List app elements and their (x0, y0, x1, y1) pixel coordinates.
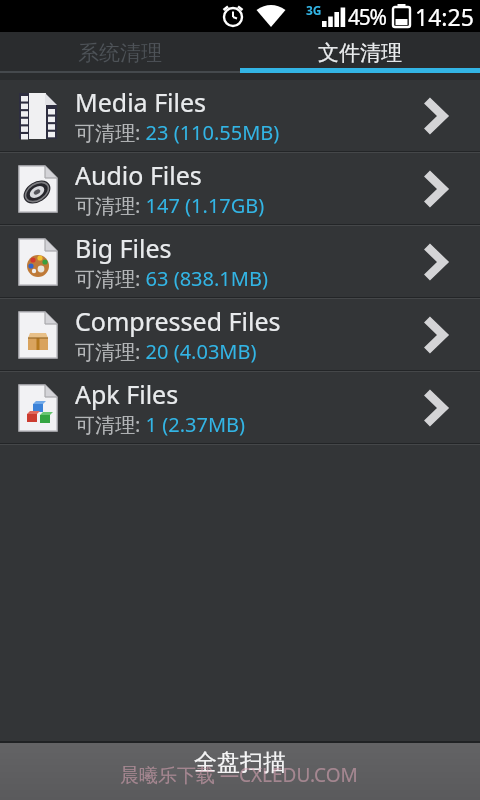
staticText: 3G (306, 2, 322, 18)
button[interactable]: Audio Files (0, 153, 480, 224)
button[interactable]: 全盘扫描 (0, 743, 480, 800)
staticText: Audio Files (75, 158, 202, 192)
staticText: 可清理: 1 (2.37MB) (75, 411, 246, 438)
button[interactable]: Media Files (0, 80, 480, 151)
staticText: 可清理: 20 (4.03MB) (75, 338, 257, 365)
staticText: 45% (348, 3, 386, 32)
staticText: 全盘扫描 (194, 748, 286, 777)
button[interactable]: 系统清理 (0, 32, 240, 80)
staticText: 系统清理 (78, 40, 162, 66)
button[interactable]: Apk Files (0, 372, 480, 443)
staticText: 可清理: 63 (838.1MB) (75, 265, 268, 292)
staticText: 晨曦乐下载 —CXLEDU.COM (120, 762, 358, 788)
button[interactable]: 文件清理 (240, 32, 480, 80)
staticText: 可清理: 147 (1.17GB) (75, 192, 265, 219)
button[interactable]: Compressed Files (0, 299, 480, 370)
staticText: Big Files (75, 231, 172, 265)
staticText: Media Files (75, 85, 207, 119)
staticText: 文件清理 (318, 40, 402, 66)
staticText: 14:25 (415, 1, 474, 32)
staticText: Compressed Files (75, 304, 281, 338)
button[interactable]: Big Files (0, 226, 480, 297)
staticText: 可清理: 23 (110.55MB) (75, 119, 280, 146)
staticText: Apk Files (75, 377, 179, 411)
